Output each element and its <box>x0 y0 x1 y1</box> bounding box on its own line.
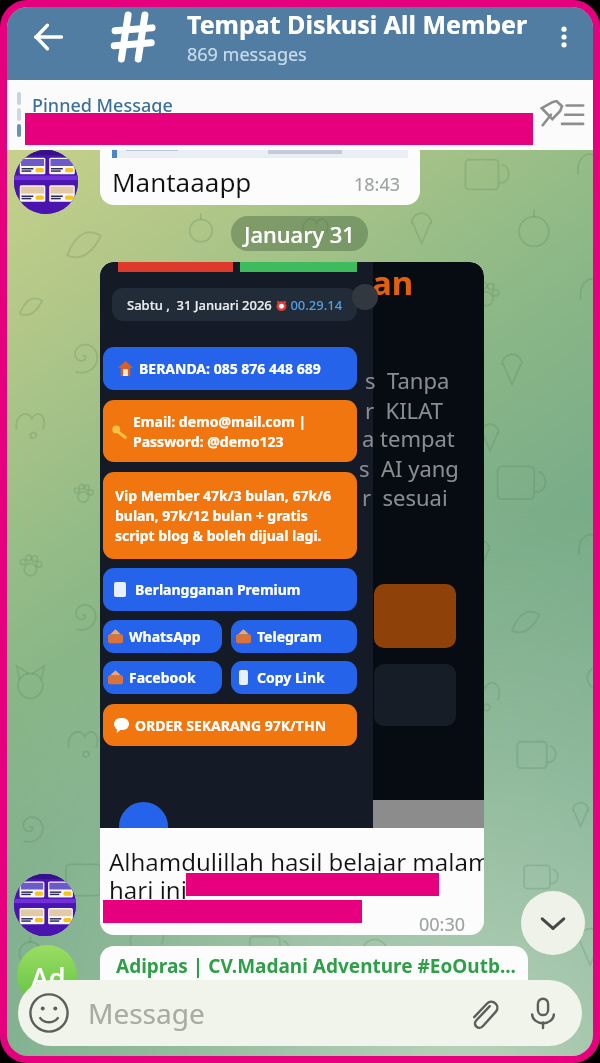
staticText: s AI yang <box>359 453 459 483</box>
staticText: 869 messages <box>187 42 307 67</box>
staticText: Sabtu , 31 Januari 2026 <box>127 296 276 314</box>
staticText: a tempat <box>362 423 455 453</box>
staticText: BERANDA: 085 876 448 689 <box>139 359 321 378</box>
button[interactable]: Record voice message <box>520 990 566 1036</box>
staticText: 00.29.14 <box>287 296 343 314</box>
staticText: Message <box>88 994 205 1032</box>
button[interactable]: ORDER SEKARANG 97K/THN <box>103 704 357 746</box>
button[interactable]: an <box>100 262 484 935</box>
staticText: an <box>372 262 414 305</box>
button[interactable]: Scroll to bottom <box>521 891 585 955</box>
staticText: Adipras | CV.Madani Adventure #EoOutb... <box>116 953 516 979</box>
staticText: ORDER SEKARANG 97K/THN <box>135 716 327 735</box>
button[interactable]: WhatsApp <box>103 620 222 653</box>
staticText: Email: demo@mail.com | Password: @demo12… <box>133 412 307 451</box>
staticText: Facebook <box>129 668 196 687</box>
staticText: s Tanpa <box>365 365 450 395</box>
staticText: 18:43 <box>354 172 401 197</box>
staticText: r KILAT <box>365 395 443 425</box>
button[interactable]: January 31 <box>231 216 368 251</box>
staticText: Berlangganan Premium <box>135 580 301 599</box>
staticText: WhatsApp <box>129 627 201 646</box>
button[interactable]: Mantaaapp <box>100 118 420 205</box>
button[interactable]: Sender avatar <box>14 150 78 214</box>
button[interactable]: More options <box>541 14 587 60</box>
staticText: Ad <box>31 959 66 996</box>
button[interactable]: Telegram <box>231 620 357 653</box>
button[interactable]: Facebook <box>103 661 222 694</box>
button[interactable]: Copy Link <box>231 661 357 694</box>
button[interactable]: Pinned Message <box>7 80 593 150</box>
staticText: January 31 <box>244 219 355 249</box>
staticText: hari ini <box>109 873 187 906</box>
staticText: Tempat Diskusi All Member <box>187 7 528 41</box>
button[interactable]: Berlangganan Premium <box>103 568 357 611</box>
staticText: Telegram <box>257 627 322 646</box>
staticText: Alhamdulillah hasil belajar malam <box>109 845 484 878</box>
button[interactable]: Sender avatar <box>14 874 76 936</box>
button[interactable]: Vip Member 47k/3 bulan, 67k/6 bulan, 97k… <box>103 472 357 559</box>
button[interactable]: Emoji <box>25 989 73 1037</box>
staticText: Vip Member 47k/3 bulan, 67k/6 bulan, 97k… <box>115 486 331 545</box>
staticText: Pinned Message <box>32 93 173 118</box>
button[interactable]: Email: demo@mail.com | Password: @demo12… <box>103 400 357 462</box>
staticText: r sesuai <box>362 482 448 512</box>
button[interactable]: Pinned messages list <box>538 94 586 132</box>
staticText: Mantaaapp <box>112 164 252 199</box>
staticText: 00:30 <box>419 912 466 935</box>
button[interactable]: Back <box>26 15 70 59</box>
button[interactable]: Attach file <box>460 990 506 1036</box>
button[interactable]: Adipras | CV.Madani Adventure #EoOutb... <box>100 946 528 1006</box>
button[interactable]: BERANDA: 085 876 448 689 <box>103 347 357 390</box>
button[interactable]: Adipras avatar <box>17 945 77 1005</box>
staticText: Copy Link <box>257 668 325 687</box>
